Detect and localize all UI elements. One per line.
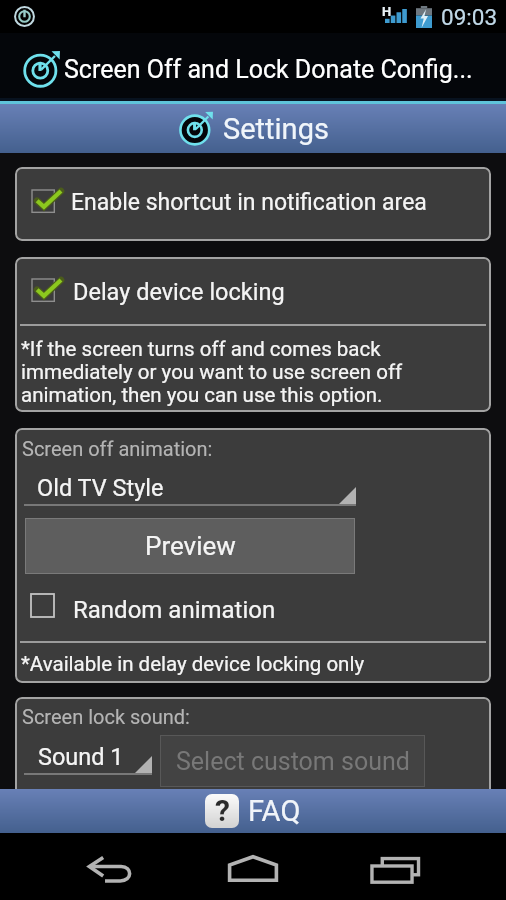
button[interactable]: Screen Off and Lock Donate Config... [0,33,506,98]
button[interactable]: Back [77,844,145,894]
button[interactable]: Preview [25,518,355,574]
staticText: Old TV Style [37,474,164,502]
staticText: Random animation [73,596,276,624]
button[interactable]: Select custom sound [160,735,425,787]
button[interactable]: Delay device locking [15,257,491,323]
button[interactable]: ? [0,789,506,833]
staticText: 09:03 [441,4,498,30]
staticText: Sound 1 [38,743,124,771]
button[interactable]: Enable shortcut in notification area [15,167,491,241]
staticText: Delay device locking [73,278,285,306]
button[interactable]: Random animation [15,588,491,624]
staticText: *Available in delay device locking only [21,652,365,676]
staticText: Preview [145,531,236,561]
staticText: Enable shortcut in notification area [71,189,427,216]
button[interactable]: Recent apps [361,844,429,894]
button[interactable]: Sound 1 [24,743,152,775]
staticText: FAQ [248,794,301,828]
staticText: *If the screen turns off and comes back … [21,337,481,407]
staticText: ? [215,794,230,827]
button[interactable]: Home [219,843,287,893]
staticText: Select custom sound [176,747,410,776]
staticText: Screen lock sound: [22,705,190,728]
staticText: Screen off animation: [22,437,213,460]
staticText: H [382,4,392,19]
staticText: Screen Off and Lock Donate Config... [64,55,473,84]
button[interactable]: Old TV Style [24,474,356,506]
button[interactable]: Settings [0,104,506,153]
staticText: Settings [223,112,329,146]
